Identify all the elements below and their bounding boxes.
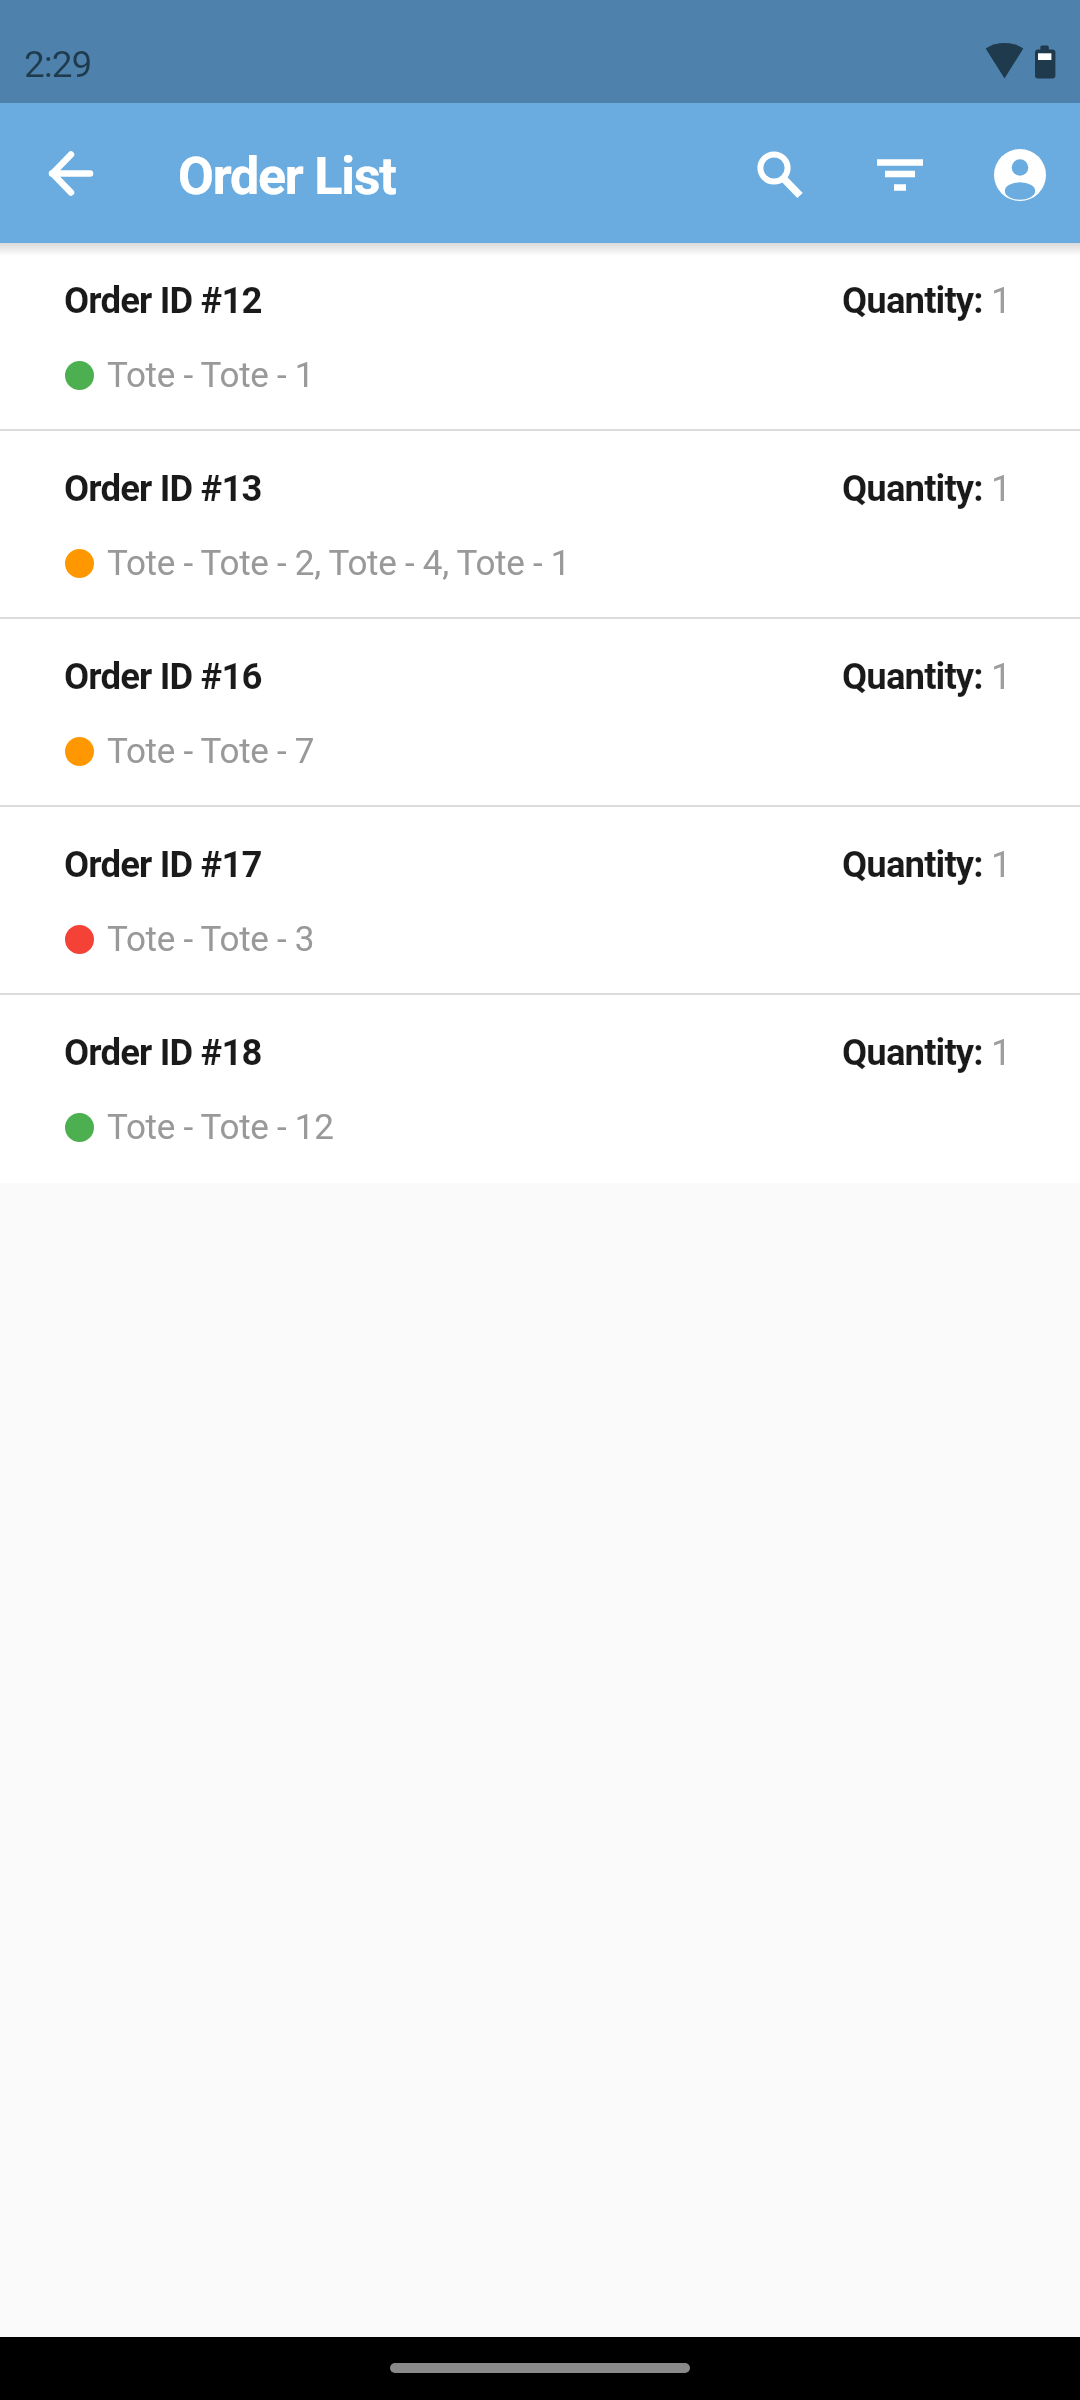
staticText: Tote - Tote - 2, Tote - 4, Tote - 1 — [107, 543, 571, 584]
staticText: Tote - Tote - 1 — [107, 355, 315, 396]
staticText: Order List — [178, 146, 396, 207]
staticText: Quantity: — [842, 1031, 991, 1074]
staticText: Order ID #13 — [64, 467, 262, 510]
staticText: 1 — [991, 655, 1011, 698]
staticText: Quantity: — [842, 655, 991, 698]
staticText: 1 — [991, 843, 1011, 886]
staticText: Order ID #16 — [64, 655, 262, 698]
staticText: 1 — [991, 1031, 1011, 1074]
staticText: Quantity: — [842, 279, 991, 322]
staticText: 1 — [991, 279, 1011, 322]
staticText: Order ID #12 — [64, 279, 262, 322]
staticText: Tote - Tote - 12 — [107, 1107, 334, 1148]
staticText: Tote - Tote - 7 — [107, 731, 315, 772]
staticText: Order ID #18 — [64, 1031, 262, 1074]
staticText: 1 — [991, 467, 1011, 510]
staticText: 2:29 — [24, 43, 92, 86]
staticText: Tote - Tote - 3 — [107, 919, 315, 960]
staticText: Order ID #17 — [64, 843, 262, 886]
staticText: Quantity: — [842, 843, 991, 886]
staticText: Quantity: — [842, 467, 991, 510]
